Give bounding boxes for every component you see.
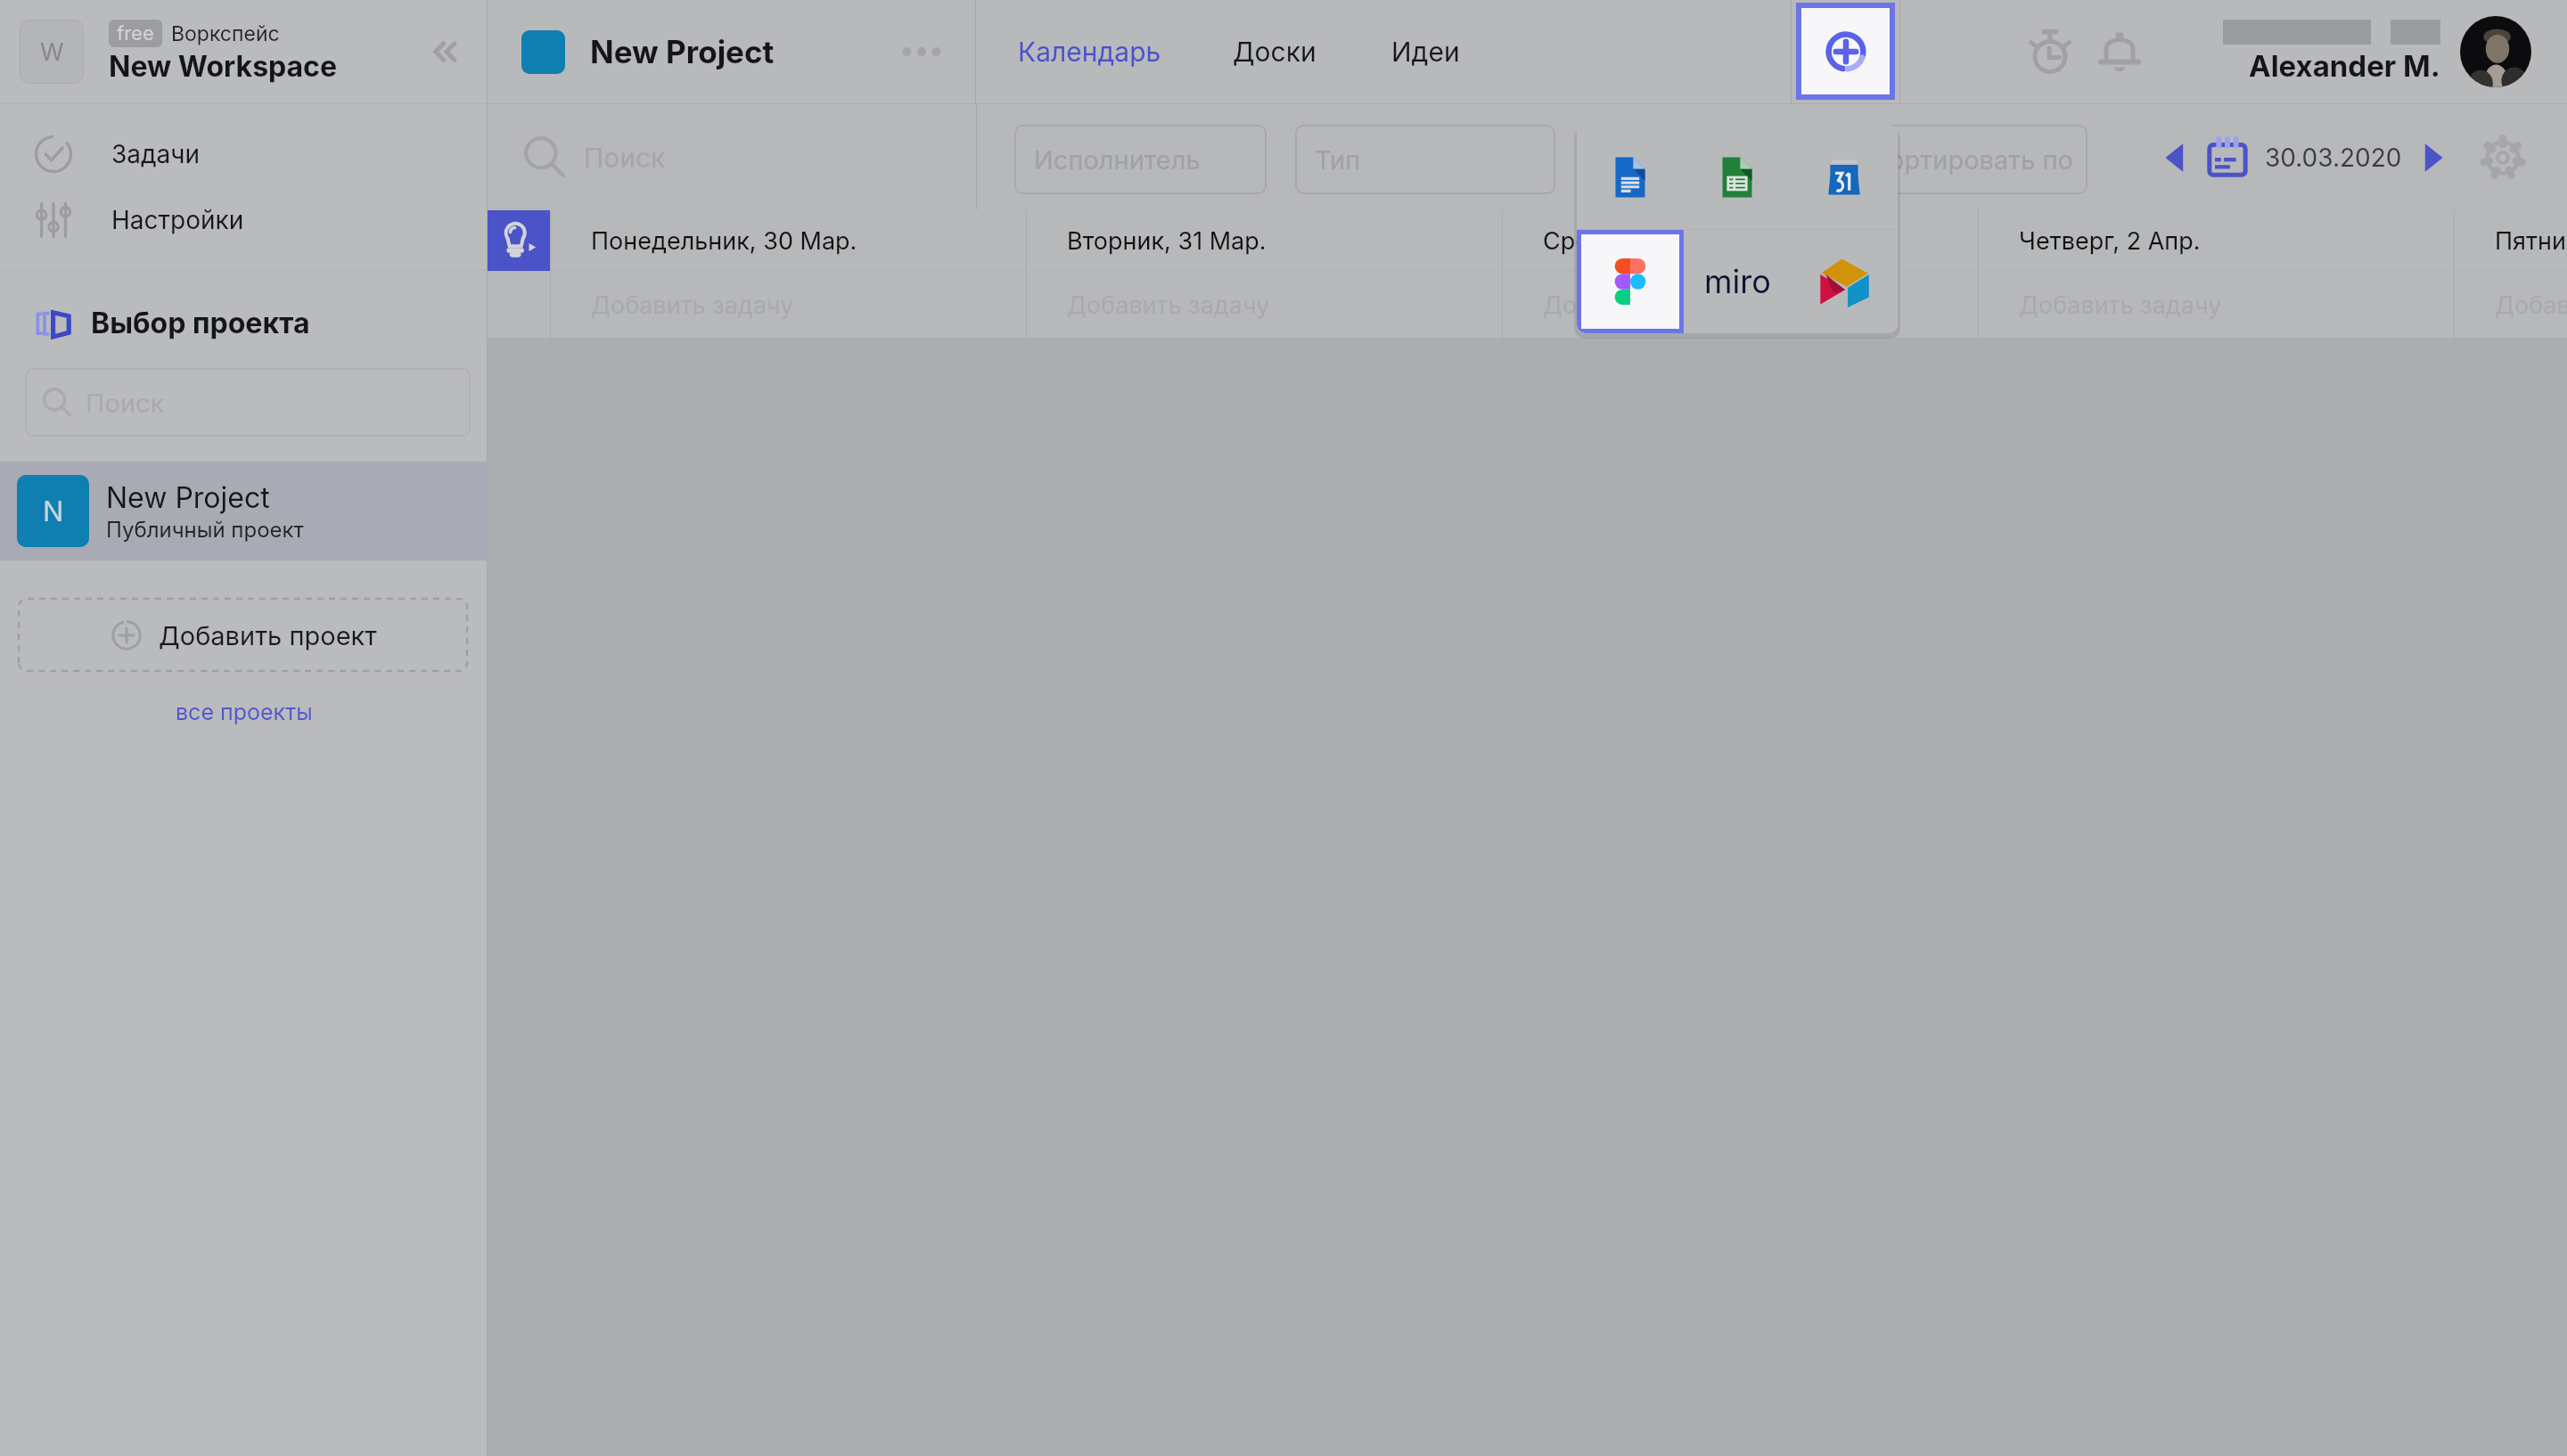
button[interactable]: Календарь xyxy=(1011,21,1169,82)
staticText: W xyxy=(40,37,64,67)
staticText: Поиск xyxy=(86,388,165,419)
staticText: New Workspace xyxy=(109,49,337,84)
button[interactable]: Previous day xyxy=(2147,104,2204,210)
button[interactable]: Исполнитель xyxy=(1014,125,1267,194)
button[interactable]: Miro xyxy=(1684,230,1791,333)
button[interactable]: Добавить задачу xyxy=(1502,272,1978,338)
button[interactable]: Google Docs xyxy=(1577,125,1684,229)
staticText: Настройки xyxy=(111,205,244,235)
button[interactable]: Поиск xyxy=(25,368,471,437)
button[interactable]: Figma xyxy=(1577,230,1684,333)
staticText: Добавить задачу xyxy=(1543,290,1746,320)
button[interactable]: Сортировать по xyxy=(1850,125,2087,194)
staticText: Идеи xyxy=(1391,36,1460,68)
staticText: Исполнитель xyxy=(1034,144,1201,176)
button[interactable]: Notifications xyxy=(2084,0,2155,103)
button[interactable]: W xyxy=(0,0,488,103)
staticText: Добавить проект xyxy=(159,620,377,651)
staticText: N xyxy=(43,495,64,528)
button[interactable]: Google Calendar xyxy=(1791,125,1898,229)
staticText: Тип xyxy=(1315,144,1361,176)
staticText: Поиск xyxy=(584,142,666,174)
button[interactable]: все проекты xyxy=(170,693,318,731)
button[interactable]: Тип xyxy=(1295,125,1555,194)
button[interactable]: Tips xyxy=(488,210,550,271)
staticText: Добавить задачу xyxy=(2495,290,2567,320)
staticText: Календарь xyxy=(1018,36,1161,68)
staticText: Понедельник, 30 Мар. xyxy=(591,226,857,256)
staticText: New Project xyxy=(590,33,775,70)
button[interactable]: Статус xyxy=(1585,125,1823,194)
staticText: Доски xyxy=(1233,36,1316,68)
button[interactable]: New Project xyxy=(488,0,975,103)
button[interactable]: Time tracking xyxy=(2014,0,2086,103)
button[interactable]: Add integration xyxy=(1796,3,1895,100)
button[interactable]: Collapse sidebar xyxy=(416,22,475,81)
button[interactable]: Добавить задачу xyxy=(2454,272,2567,338)
button[interactable]: N xyxy=(0,462,488,560)
button[interactable]: Идеи xyxy=(1384,21,1467,82)
button[interactable]: InVision xyxy=(1791,230,1898,333)
staticText: Alexander M. xyxy=(2249,48,2440,84)
staticText: free xyxy=(117,21,154,45)
staticText: Добавить задачу xyxy=(591,290,794,320)
staticText: Выбор проекта xyxy=(91,306,310,340)
button[interactable]: Google Sheets xyxy=(1684,125,1791,229)
staticText: Добавить задачу xyxy=(2019,290,2222,320)
button[interactable]: Выбор проекта xyxy=(0,290,488,355)
button[interactable]: Доски xyxy=(1226,21,1324,82)
staticText: Добавить задачу xyxy=(1067,290,1270,320)
staticText: Публичный проект xyxy=(106,517,304,543)
staticText: Четверг, 2 Апр. xyxy=(2019,226,2201,256)
button[interactable]: Добавить проект xyxy=(19,599,467,671)
staticText: все проекты xyxy=(176,699,313,725)
button[interactable]: Настройки xyxy=(0,190,488,250)
staticText: Вторник, 31 Мар. xyxy=(1067,226,1267,256)
staticText: Воркспейс xyxy=(171,21,280,46)
staticText: miro xyxy=(1704,262,1771,301)
button[interactable]: More options xyxy=(895,25,948,78)
button[interactable]: Next day xyxy=(2404,104,2461,210)
staticText: Задачи xyxy=(111,139,201,169)
staticText: Среда, 1 Апр. xyxy=(1543,226,1701,256)
staticText: Статус xyxy=(1604,144,1692,176)
staticText: 30.03.2020 xyxy=(2265,143,2402,173)
staticText: Пятница, 3 Апр. xyxy=(2495,226,2567,256)
staticText: Сортировать по xyxy=(1870,144,2074,176)
button[interactable]: Calendar settings xyxy=(2470,104,2536,210)
button[interactable]: 30.03.2020 xyxy=(2206,104,2402,210)
button[interactable]: Задачи xyxy=(0,124,488,184)
button[interactable]: Alexander M. xyxy=(2223,16,2531,87)
staticText: New Project xyxy=(106,480,270,515)
